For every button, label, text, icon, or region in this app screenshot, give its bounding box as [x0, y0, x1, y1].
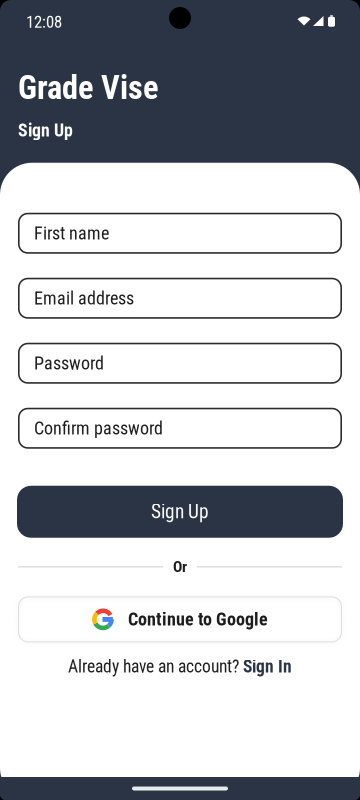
button[interactable]: Confirm password	[18, 408, 342, 449]
staticText: Sign Up	[151, 500, 209, 523]
staticText: Or	[173, 558, 187, 576]
staticText: Password	[34, 353, 104, 374]
staticText: Already have an account?	[68, 656, 239, 677]
staticText: Sign In	[243, 656, 292, 677]
button[interactable]: Already have an account?	[68, 656, 292, 677]
staticText: 12:08	[26, 12, 62, 32]
button[interactable]: Sign Up	[17, 486, 343, 538]
staticText: Email address	[34, 288, 134, 309]
staticText: First name	[34, 223, 109, 244]
button[interactable]: Email address	[18, 278, 342, 319]
button[interactable]: Password	[18, 343, 342, 384]
staticText: Confirm password	[34, 418, 163, 439]
staticText: Sign Up	[18, 120, 73, 141]
staticText: Continue to Google	[128, 609, 268, 630]
button[interactable]: First name	[18, 213, 342, 254]
button[interactable]: Continue to Google	[18, 596, 342, 642]
staticText: Grade Vise	[18, 69, 159, 107]
